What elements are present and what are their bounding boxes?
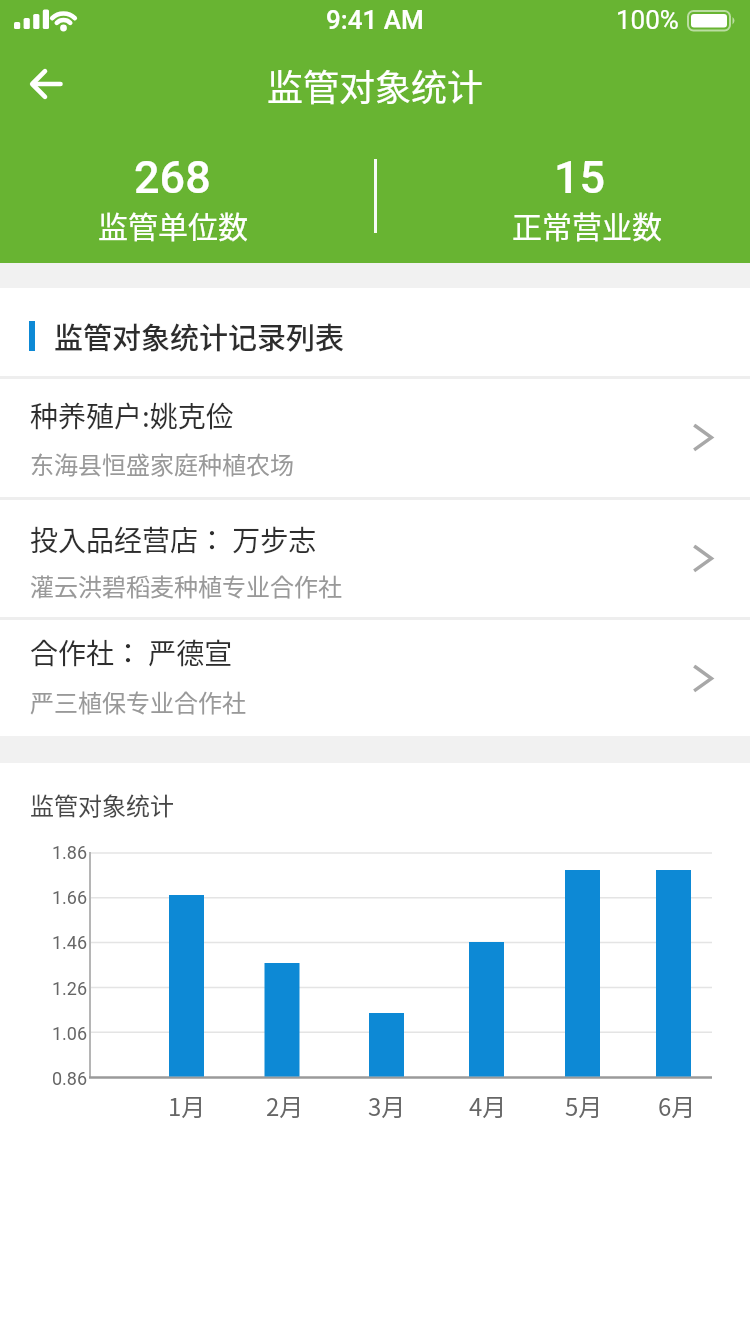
staticText: 监管对象统计 [267, 59, 484, 111]
staticText: 5月 [565, 1088, 603, 1123]
staticText: 1.06 [52, 1023, 88, 1044]
staticText: 正常营业数 [512, 203, 662, 246]
button[interactable]: 投入品经营店： 万步志 [0, 498, 750, 618]
staticText: 100% [616, 5, 679, 35]
staticText: 15 [554, 151, 606, 204]
staticText: 1.26 [52, 978, 88, 999]
staticText: 灌云洪碧稻麦种植专业合作社 [30, 568, 342, 603]
staticText: 0.86 [52, 1068, 88, 1089]
staticText: 2月 [266, 1088, 304, 1123]
staticText: 4月 [469, 1088, 507, 1123]
staticText: 6月 [658, 1088, 696, 1123]
staticText: 监管对象统计 [30, 787, 174, 822]
staticText: 合作社： 严德宣 [30, 632, 233, 673]
staticText: 投入品经营店： 万步志 [30, 519, 317, 560]
staticText: 东海县恒盛家庭种植农场 [30, 446, 294, 481]
staticText: 严三植保专业合作社 [30, 684, 246, 719]
button[interactable]: 种养殖户:姚克俭 [0, 377, 750, 497]
staticText: 1.46 [52, 932, 88, 953]
staticText: 1.86 [52, 842, 88, 863]
staticText: 268 [134, 151, 211, 204]
staticText: 监管对象统计记录列表 [54, 315, 345, 357]
staticText: 1月 [168, 1088, 206, 1123]
button[interactable]: 合作社： 严德宣 [0, 618, 750, 738]
staticText: 1.66 [52, 887, 88, 908]
staticText: 种养殖户:姚克俭 [30, 395, 234, 436]
staticText: 监管单位数 [98, 203, 248, 246]
button[interactable] [14, 58, 78, 110]
staticText: 9:41 AM [326, 5, 424, 35]
staticText: 3月 [368, 1088, 406, 1123]
